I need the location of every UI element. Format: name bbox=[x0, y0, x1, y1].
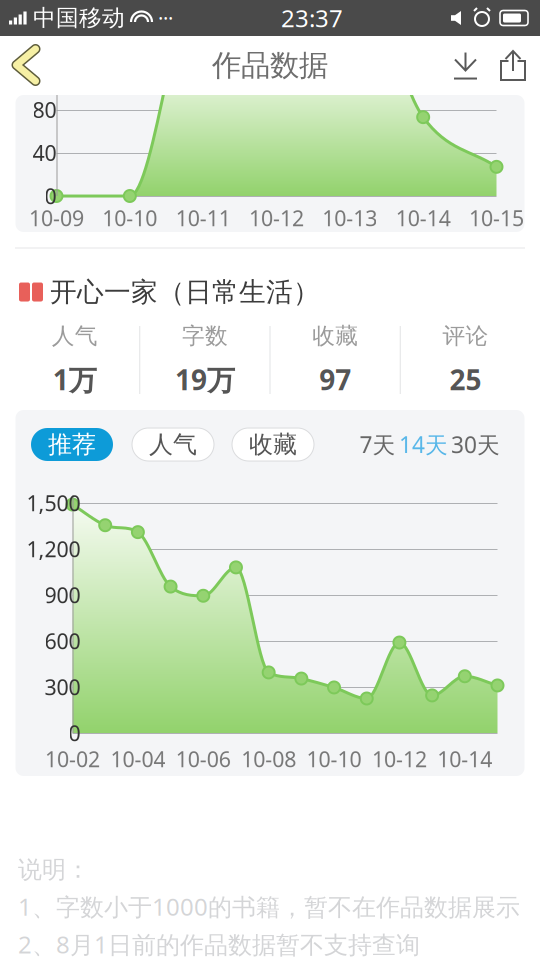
staticText: 开心一家（日常生活） bbox=[50, 276, 320, 308]
staticText: 300 bbox=[44, 673, 80, 701]
staticText: 1,200 bbox=[26, 535, 80, 563]
staticText: 19万 bbox=[175, 361, 235, 398]
staticText: 23:37 bbox=[281, 2, 343, 34]
staticText: 0 bbox=[44, 182, 56, 210]
staticText: 10-15 bbox=[469, 204, 524, 232]
staticText: 10-04 bbox=[110, 745, 165, 773]
staticText: 10-12 bbox=[249, 204, 304, 232]
staticText: 10-02 bbox=[45, 745, 100, 773]
staticText: 收藏 bbox=[312, 322, 358, 350]
staticText: ··· bbox=[158, 5, 173, 31]
staticText: 10-11 bbox=[176, 204, 231, 232]
staticText: 作品数据 bbox=[212, 47, 328, 83]
staticText: 25 bbox=[449, 361, 481, 398]
staticText: 10-12 bbox=[372, 745, 427, 773]
staticText: 80 bbox=[32, 95, 56, 124]
staticText: 1万 bbox=[53, 361, 97, 398]
staticText: 14天 bbox=[399, 429, 448, 459]
button[interactable]: 分享 bbox=[489, 39, 537, 92]
staticText: 600 bbox=[44, 627, 80, 655]
staticText: 推荐 bbox=[48, 430, 96, 459]
staticText: 10-13 bbox=[322, 204, 377, 232]
button[interactable]: 人气 bbox=[132, 428, 214, 461]
button[interactable]: 下载 bbox=[442, 38, 489, 92]
staticText: 1、字数小于1000的书籍，暂不在作品数据展示 bbox=[18, 890, 520, 922]
staticText: 10-14 bbox=[437, 745, 492, 773]
staticText: 900 bbox=[44, 581, 80, 609]
staticText: 评论 bbox=[442, 322, 488, 350]
button[interactable]: 7天 bbox=[358, 430, 396, 458]
button[interactable]: 收藏 bbox=[232, 428, 314, 461]
staticText: 40 bbox=[32, 139, 56, 167]
staticText: 人气 bbox=[52, 322, 98, 350]
staticText: 1,500 bbox=[26, 489, 80, 517]
button[interactable]: 30天 bbox=[451, 430, 499, 458]
staticText: 说明： bbox=[18, 855, 90, 884]
staticText: 中国移动 bbox=[33, 4, 125, 32]
staticText: 字数 bbox=[182, 322, 228, 350]
staticText: 30天 bbox=[451, 429, 500, 459]
staticText: 10-14 bbox=[396, 204, 451, 232]
staticText: 10-10 bbox=[102, 204, 157, 232]
staticText: 人气 bbox=[149, 430, 197, 459]
staticText: 7天 bbox=[359, 429, 395, 459]
button[interactable]: 推荐 bbox=[31, 428, 113, 461]
button[interactable]: 14天 bbox=[399, 430, 447, 458]
staticText: 10-09 bbox=[29, 204, 84, 232]
staticText: 97 bbox=[319, 361, 351, 398]
staticText: 收藏 bbox=[249, 430, 297, 459]
button[interactable]: 返回 bbox=[0, 36, 52, 95]
staticText: 10-08 bbox=[241, 745, 296, 773]
staticText: 0 bbox=[68, 719, 80, 747]
staticText: 2、8月1日前的作品数据暂不支持查询 bbox=[18, 928, 420, 960]
staticText: 10-10 bbox=[306, 745, 361, 773]
staticText: 10-06 bbox=[176, 745, 231, 773]
